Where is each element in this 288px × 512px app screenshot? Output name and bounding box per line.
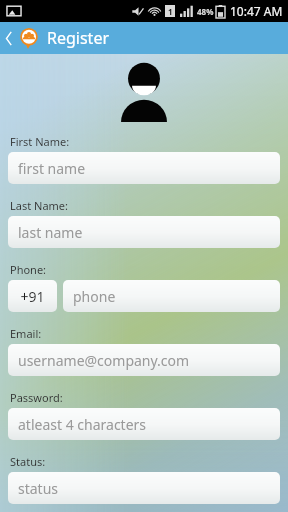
button[interactable]: Back: [0, 22, 18, 54]
staticText: 48%: [197, 6, 214, 17]
staticText: Password:: [10, 390, 63, 405]
button[interactable]: Profile photo: [116, 60, 172, 122]
button[interactable]: username@company.com: [8, 344, 280, 376]
staticText: atleast 4 characters: [18, 415, 147, 434]
staticText: Last Name:: [10, 198, 69, 213]
staticText: Email:: [10, 326, 42, 341]
staticText: First Name:: [10, 134, 70, 149]
button[interactable]: atleast 4 characters: [8, 408, 280, 440]
button[interactable]: status: [8, 472, 280, 504]
staticText: status: [18, 479, 59, 498]
button[interactable]: last name: [8, 216, 280, 248]
staticText: Register: [47, 27, 110, 49]
button[interactable]: first name: [8, 152, 280, 184]
staticText: Phone:: [10, 262, 47, 277]
staticText: 10:47 AM: [230, 3, 283, 19]
staticText: last name: [18, 223, 83, 242]
staticText: 1: [168, 6, 173, 17]
staticText: first name: [18, 159, 86, 178]
staticText: Status:: [10, 454, 46, 469]
staticText: +91: [20, 287, 45, 306]
button[interactable]: phone: [63, 280, 280, 312]
staticText: phone: [73, 287, 116, 306]
staticText: username@company.com: [18, 351, 190, 370]
button[interactable]: +91: [8, 280, 57, 312]
